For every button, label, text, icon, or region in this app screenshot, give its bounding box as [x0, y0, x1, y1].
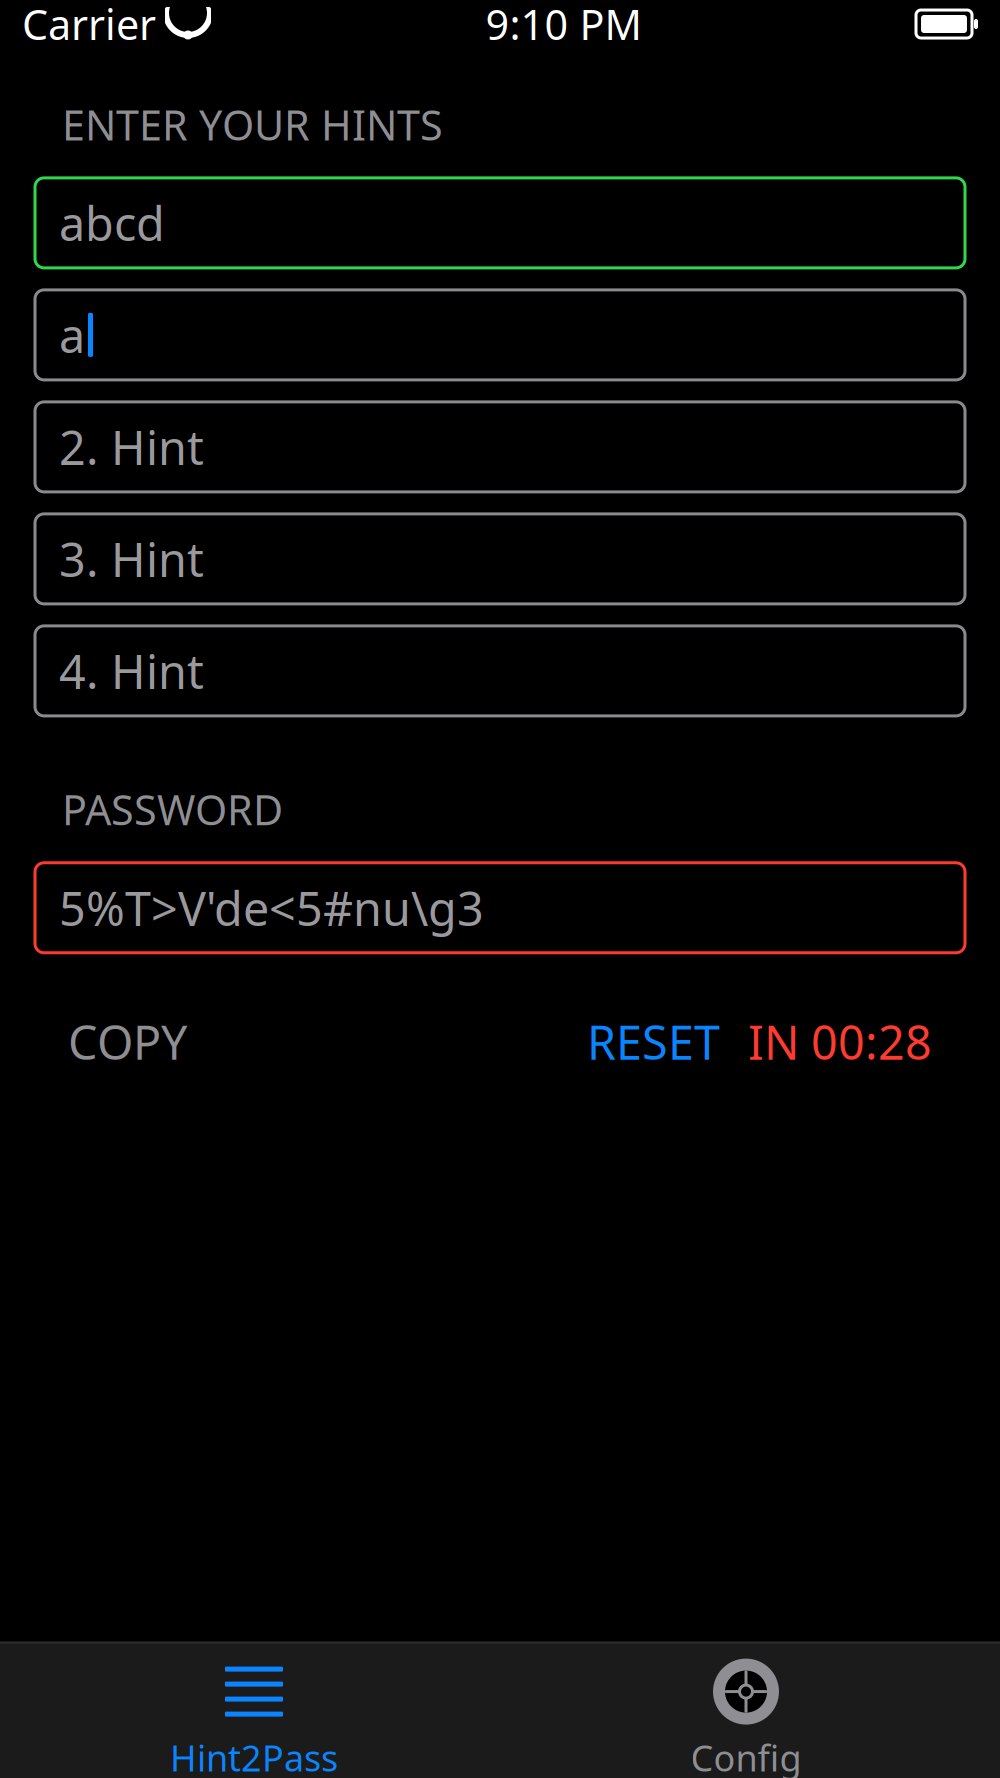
button[interactable]: 2. Hint [35, 402, 965, 492]
staticText: 3. Hint [59, 528, 204, 590]
button[interactable]: COPY [68, 1003, 187, 1081]
button[interactable]: abcd [35, 178, 965, 268]
button[interactable]: RESET [587, 1003, 720, 1081]
staticText: PASSWORD [62, 782, 283, 837]
button[interactable]: 5%T>V'de<5#nu\g3 [35, 863, 965, 953]
button[interactable]: Config [500, 1644, 992, 1778]
button[interactable]: a [35, 290, 965, 380]
button[interactable]: Hint2Pass [8, 1644, 500, 1778]
staticText: RESET [587, 1011, 720, 1073]
staticText: COPY [68, 1011, 187, 1073]
staticText: ENTER YOUR HINTS [62, 97, 443, 152]
staticText: a [59, 304, 85, 366]
staticText: 9:10 PM [485, 0, 641, 51]
button[interactable]: 4. Hint [35, 626, 965, 716]
staticText: 4. Hint [59, 640, 204, 702]
staticText: Hint2Pass [170, 1734, 338, 1778]
staticText: abcd [59, 192, 165, 254]
staticText: 5%T>V'de<5#nu\g3 [59, 877, 484, 939]
staticText: 2. Hint [59, 416, 204, 478]
button[interactable]: 3. Hint [35, 514, 965, 604]
staticText: Carrier [22, 0, 156, 51]
staticText: IN 00:28 [748, 1011, 932, 1073]
staticText: Config [690, 1734, 801, 1778]
